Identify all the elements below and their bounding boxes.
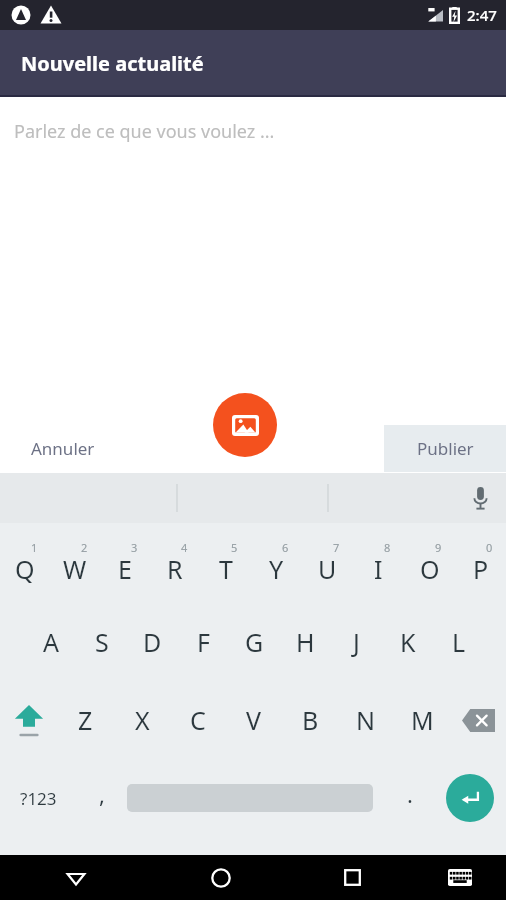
staticText: Y (269, 552, 284, 586)
staticText: Z (78, 703, 93, 737)
button[interactable]: M (394, 681, 450, 759)
staticText: ?123 (20, 787, 57, 810)
button[interactable]: 4 (150, 523, 200, 603)
button[interactable]: 6 (251, 523, 302, 603)
button[interactable]: Accueil (151, 855, 291, 900)
button[interactable]: , (76, 759, 128, 837)
button[interactable]: Majuscule (0, 681, 57, 759)
staticText: 4 (181, 540, 188, 555)
staticText: R (167, 552, 183, 586)
staticText: 2:47 (467, 5, 497, 25)
staticText: H (296, 625, 315, 659)
staticText: Nouvelle actualité (21, 50, 204, 77)
button[interactable]: 2 (50, 523, 100, 603)
button[interactable]: S (76, 603, 127, 681)
button[interactable]: Z (57, 681, 114, 759)
button[interactable]: 0 (455, 523, 506, 603)
staticText: P (473, 552, 489, 586)
button[interactable]: F (178, 603, 229, 681)
button[interactable]: Masquer le clavier (0, 855, 151, 900)
staticText: I (374, 552, 383, 586)
staticText: 7 (333, 540, 340, 555)
button[interactable]: H (280, 603, 331, 681)
staticText: A (43, 625, 59, 659)
button[interactable]: 9 (404, 523, 455, 603)
button[interactable]: Annuler (0, 424, 126, 473)
staticText: G (245, 625, 264, 659)
button[interactable]: C (170, 681, 226, 759)
button[interactable]: Entrée (446, 774, 494, 822)
staticText: , (99, 779, 105, 809)
staticText: C (190, 703, 206, 737)
button[interactable]: 7 (302, 523, 353, 603)
staticText: L (452, 625, 466, 659)
staticText: S (95, 625, 109, 659)
staticText: 3 (131, 540, 138, 555)
button[interactable]: Changer de clavier (413, 855, 506, 900)
button[interactable]: 5 (200, 523, 251, 603)
button[interactable]: G (229, 603, 280, 681)
staticText: Q (15, 552, 35, 586)
staticText: 6 (282, 540, 289, 555)
staticText: J (353, 625, 360, 659)
staticText: F (197, 625, 210, 659)
button[interactable]: J (331, 603, 382, 681)
staticText: D (143, 625, 162, 659)
staticText: K (400, 625, 416, 659)
staticText: 1 (31, 540, 38, 555)
staticText: 9 (435, 540, 442, 555)
staticText: 8 (384, 540, 391, 555)
staticText: 0 (486, 540, 493, 555)
button[interactable]: Applications récentes (291, 855, 413, 900)
button[interactable]: ?123 (0, 759, 76, 837)
button[interactable]: L (433, 603, 484, 681)
staticText: V (246, 703, 262, 737)
button[interactable]: 8 (353, 523, 404, 603)
staticText: O (420, 552, 440, 586)
staticText: N (356, 703, 376, 737)
staticText: Annuler (31, 437, 95, 460)
staticText: . (407, 779, 413, 809)
button[interactable]: D (127, 603, 178, 681)
button[interactable]: Ajouter une image (213, 393, 277, 457)
staticText: 5 (231, 540, 238, 555)
button[interactable]: Retour arrière (450, 681, 506, 759)
button[interactable]: . (388, 759, 432, 837)
button[interactable]: 3 (100, 523, 150, 603)
staticText: T (219, 552, 233, 586)
button[interactable]: A (25, 603, 76, 681)
button[interactable]: V (226, 681, 282, 759)
staticText: X (135, 703, 150, 737)
staticText: M (411, 703, 434, 737)
button[interactable]: N (338, 681, 394, 759)
staticText: W (63, 552, 87, 586)
button[interactable]: K (382, 603, 433, 681)
button[interactable]: B (282, 681, 338, 759)
button[interactable]: 1 (0, 523, 50, 603)
button[interactable]: Publier (384, 425, 506, 472)
staticText: B (302, 703, 319, 737)
staticText: Publier (417, 437, 474, 460)
staticText: Parlez de ce que vous voulez ... (14, 119, 275, 144)
button[interactable]: Saisie vocale (454, 473, 506, 523)
staticText: U (318, 552, 337, 586)
button[interactable]: X (114, 681, 170, 759)
staticText: 2 (81, 540, 88, 555)
staticText: E (118, 552, 132, 586)
